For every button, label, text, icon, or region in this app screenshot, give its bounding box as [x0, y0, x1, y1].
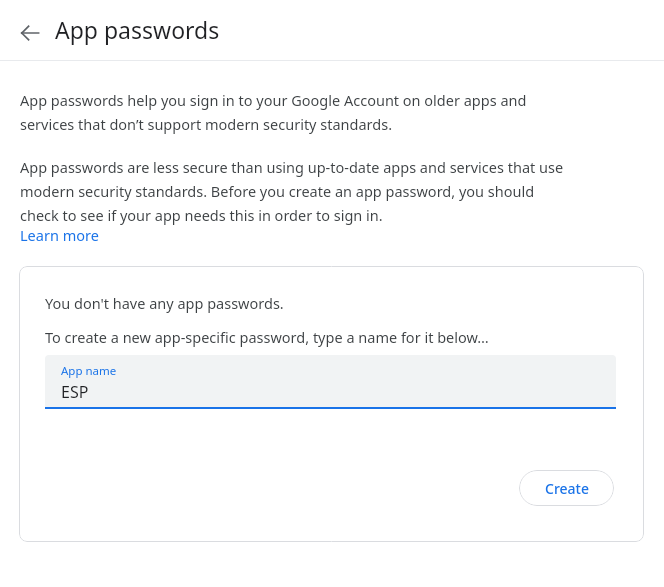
button[interactable]: App name [45, 355, 616, 409]
staticText: To create a new app-specific password, t… [45, 327, 489, 347]
staticText: ESP [61, 381, 89, 403]
staticText: App passwords [55, 14, 220, 45]
staticText: You don't have any app passwords. [45, 293, 284, 313]
staticText: Learn more [20, 225, 99, 245]
button[interactable]: Back [14, 17, 46, 49]
staticText: App passwords help you sign in to your G… [20, 90, 578, 134]
button[interactable]: Learn more [20, 225, 99, 245]
staticText: App passwords are less secure than using… [20, 157, 568, 225]
button[interactable]: Create [519, 470, 614, 506]
staticText: App name [61, 363, 117, 379]
staticText: Create [545, 479, 589, 498]
